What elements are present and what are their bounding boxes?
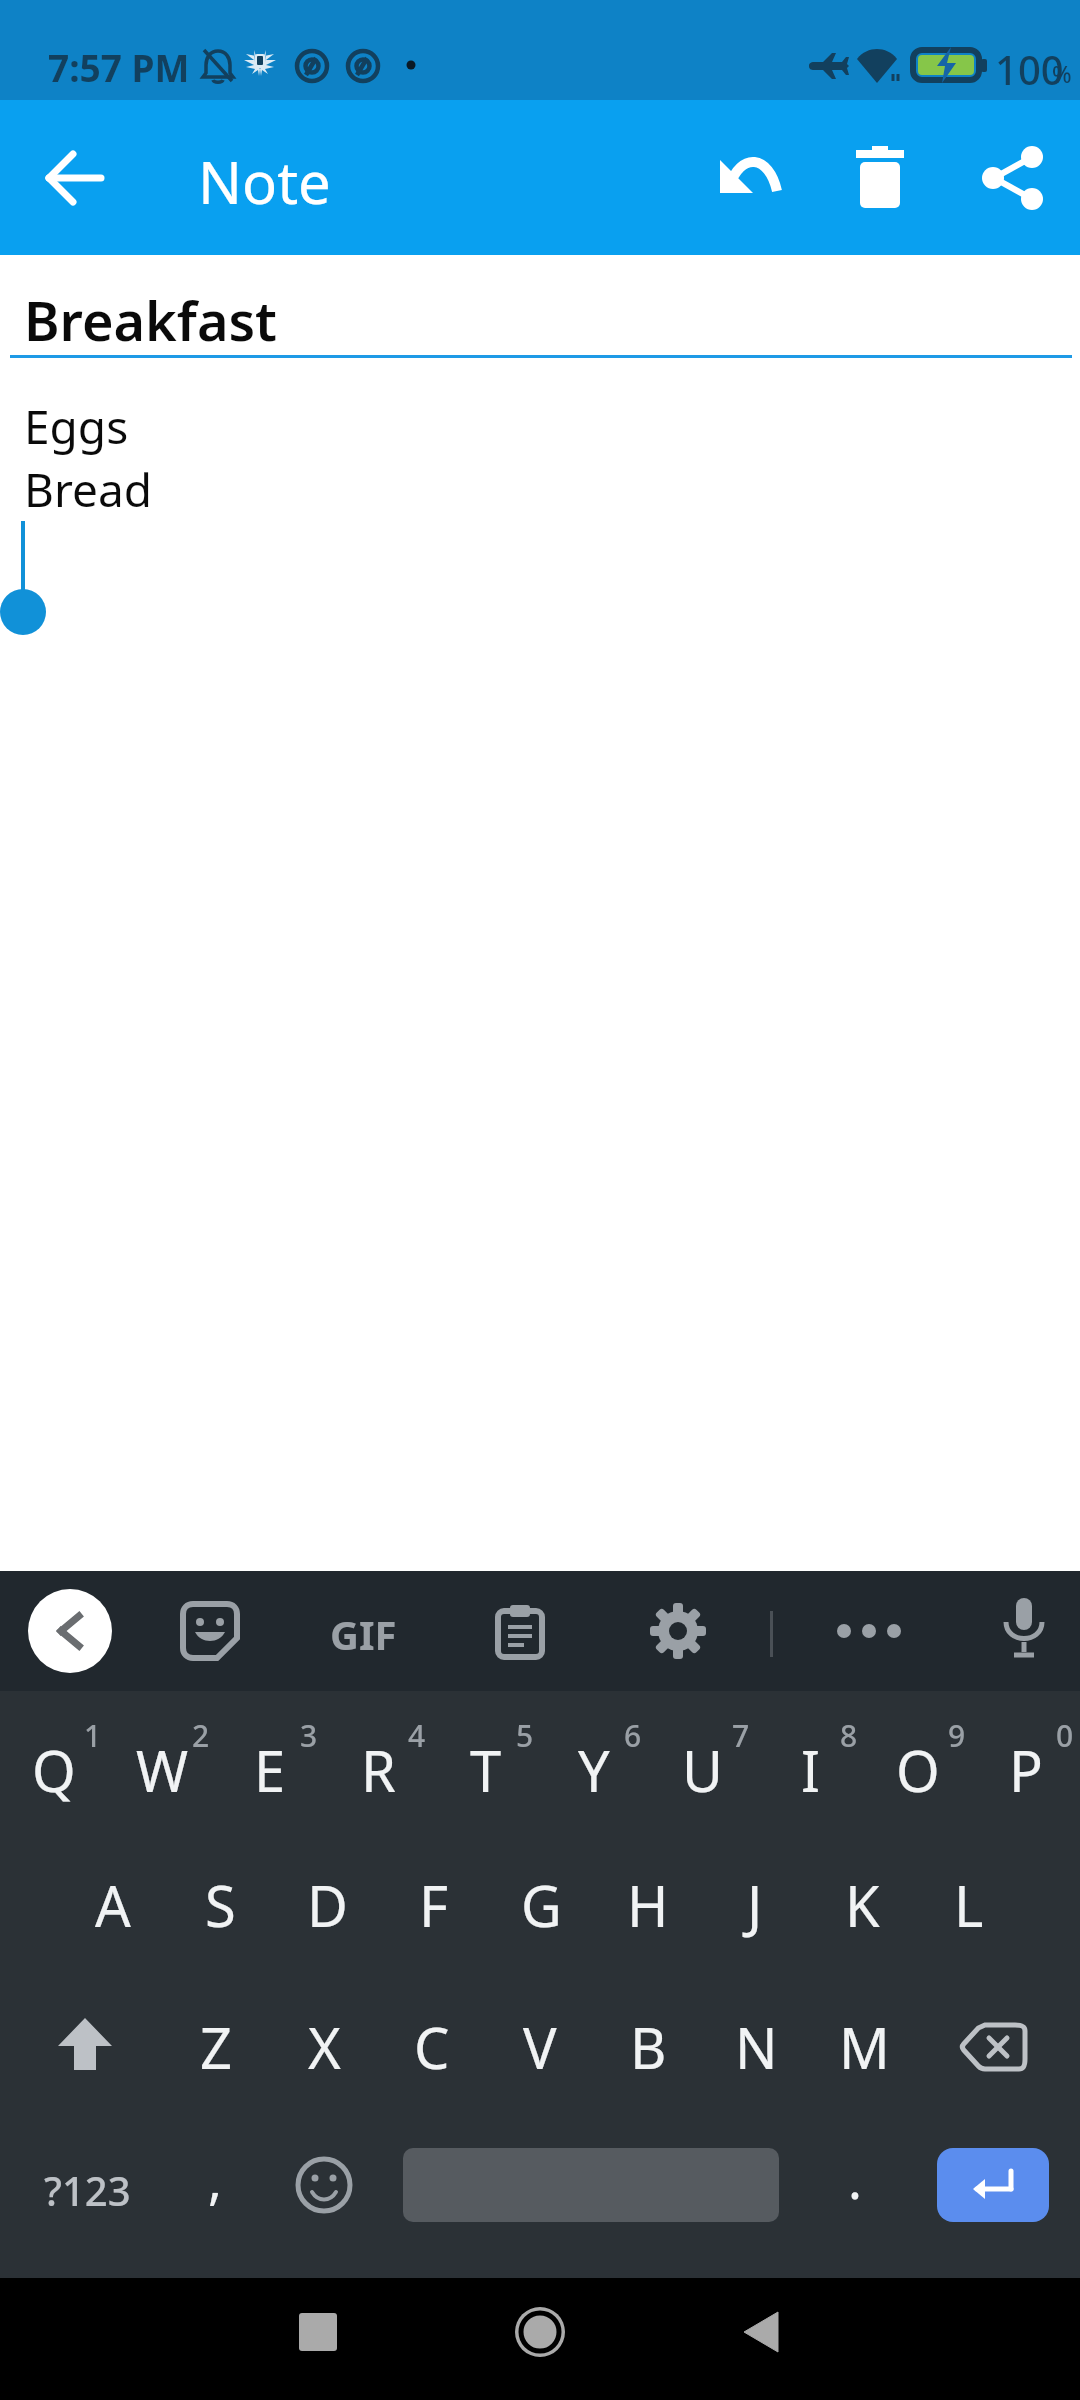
- staticText: 100: [995, 42, 1064, 96]
- staticText: 9: [948, 1715, 966, 1756]
- button[interactable]: G: [487, 1855, 595, 1955]
- button[interactable]: J: [701, 1855, 809, 1955]
- staticText: K: [845, 1867, 880, 1943]
- button[interactable]: T: [432, 1720, 540, 1820]
- staticText: 7:57 PM: [48, 42, 190, 92]
- staticText: G: [521, 1867, 562, 1943]
- staticText: S: [205, 1867, 236, 1943]
- button[interactable]: [990, 1595, 1058, 1663]
- button[interactable]: [504, 2296, 576, 2368]
- button[interactable]: ,: [208, 2143, 222, 2214]
- staticText: 1: [84, 1715, 102, 1756]
- staticText: F: [419, 1867, 449, 1943]
- staticText: Breakfast: [24, 283, 278, 357]
- button[interactable]: .: [848, 2143, 862, 2214]
- staticText: I: [801, 1732, 820, 1808]
- button[interactable]: W: [108, 1720, 216, 1820]
- button[interactable]: [176, 1597, 244, 1665]
- button[interactable]: E: [216, 1720, 324, 1820]
- button[interactable]: [644, 1597, 712, 1665]
- staticText: Q: [32, 1732, 76, 1808]
- button[interactable]: A: [59, 1855, 167, 1955]
- staticText: P: [1009, 1732, 1043, 1808]
- staticText: Z: [200, 2009, 233, 2085]
- button[interactable]: U: [648, 1720, 756, 1820]
- staticText: O: [896, 1732, 940, 1808]
- button[interactable]: X: [270, 1997, 378, 2097]
- button[interactable]: O: [864, 1720, 972, 1820]
- staticText: X: [308, 2009, 341, 2085]
- staticText: T: [470, 1732, 502, 1808]
- button[interactable]: R: [324, 1720, 432, 1820]
- staticText: Note: [198, 142, 331, 221]
- button[interactable]: S: [166, 1855, 274, 1955]
- button[interactable]: F: [380, 1855, 488, 1955]
- staticText: Y: [578, 1732, 610, 1808]
- staticText: H: [627, 1867, 669, 1943]
- staticText: N: [735, 2009, 778, 2085]
- staticText: %: [1052, 58, 1072, 89]
- staticText: 6: [624, 1715, 642, 1756]
- button[interactable]: H: [594, 1855, 702, 1955]
- button[interactable]: [713, 143, 783, 213]
- staticText: J: [747, 1867, 763, 1943]
- button[interactable]: [28, 1589, 112, 1673]
- button[interactable]: B: [594, 1997, 702, 2097]
- button[interactable]: [836, 1623, 902, 1639]
- button[interactable]: C: [378, 1997, 486, 2097]
- button[interactable]: D: [273, 1855, 381, 1955]
- button[interactable]: [282, 2296, 354, 2368]
- staticText: B: [630, 2009, 667, 2085]
- staticText: E: [254, 1732, 286, 1808]
- staticText: 3: [300, 1715, 318, 1756]
- button[interactable]: [40, 143, 110, 213]
- staticText: U: [682, 1732, 723, 1808]
- button[interactable]: Z: [162, 1997, 270, 2097]
- button[interactable]: V: [486, 1997, 594, 2097]
- staticText: L: [954, 1867, 984, 1943]
- staticText: D: [307, 1867, 348, 1943]
- staticText: 2: [192, 1715, 210, 1756]
- staticText: C: [414, 2009, 450, 2085]
- staticText: V: [523, 2009, 557, 2085]
- staticText: A: [95, 1867, 131, 1943]
- button[interactable]: L: [915, 1855, 1023, 1955]
- button[interactable]: N: [702, 1997, 810, 2097]
- button[interactable]: GIF: [330, 1607, 397, 1661]
- staticText: 7: [732, 1715, 750, 1756]
- button[interactable]: [978, 143, 1048, 213]
- button[interactable]: [290, 2151, 358, 2219]
- button[interactable]: [937, 2148, 1049, 2222]
- button[interactable]: Y: [540, 1720, 648, 1820]
- button[interactable]: [845, 143, 915, 213]
- button[interactable]: K: [808, 1855, 916, 1955]
- staticText: R: [361, 1732, 396, 1808]
- staticText: 4: [408, 1715, 426, 1756]
- staticText: 5: [516, 1715, 534, 1756]
- button[interactable]: P: [972, 1720, 1080, 1820]
- staticText: Eggs Bread: [24, 395, 153, 520]
- button[interactable]: [486, 1597, 554, 1665]
- button[interactable]: I: [756, 1720, 864, 1820]
- staticText: 8: [840, 1715, 858, 1756]
- button[interactable]: [937, 1997, 1049, 2097]
- staticText: M: [839, 2009, 890, 2085]
- staticText: W: [136, 1732, 189, 1808]
- button[interactable]: ?123: [44, 2163, 131, 2217]
- staticText: 0: [1056, 1715, 1074, 1756]
- button[interactable]: [726, 2296, 798, 2368]
- button[interactable]: [30, 1997, 140, 2097]
- button[interactable]: Q: [0, 1720, 108, 1820]
- button[interactable]: M: [810, 1997, 918, 2097]
